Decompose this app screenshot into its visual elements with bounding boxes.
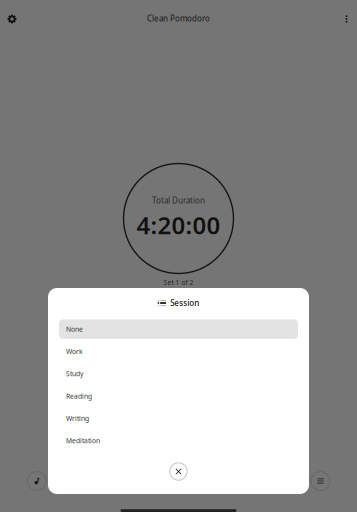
- button[interactable]: Meditation: [59, 431, 298, 450]
- staticText: Study: [66, 369, 83, 378]
- button[interactable]: Writing: [59, 409, 298, 428]
- button[interactable]: More options: [335, 7, 357, 31]
- staticText: Set 1 of 2: [163, 278, 193, 287]
- button[interactable]: Reading: [59, 386, 298, 406]
- button[interactable]: Menu: [307, 468, 333, 494]
- staticText: Work: [66, 347, 83, 356]
- staticText: Session: [170, 298, 199, 308]
- staticText: 4:20:00: [136, 209, 220, 241]
- button[interactable]: Study: [59, 364, 298, 384]
- staticText: Total Duration: [152, 195, 205, 206]
- staticText: None: [66, 325, 83, 334]
- staticText: Clean Pomodoro: [147, 13, 210, 24]
- button[interactable]: None: [59, 319, 298, 339]
- staticText: Reading: [66, 392, 92, 400]
- button[interactable]: Sound: [24, 468, 50, 494]
- button[interactable]: Work: [59, 342, 298, 361]
- button[interactable]: Close: [165, 458, 191, 484]
- button[interactable]: Settings: [0, 7, 24, 31]
- staticText: Meditation: [66, 436, 100, 445]
- staticText: Writing: [66, 414, 89, 423]
